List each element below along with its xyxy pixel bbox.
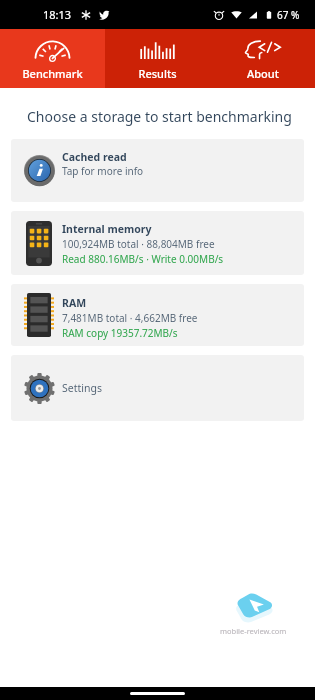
staticText: RAM [62, 296, 87, 310]
button[interactable]: Cached read [11, 139, 304, 202]
button[interactable]: About [210, 29, 315, 88]
button[interactable]: Settings [11, 355, 304, 421]
staticText: Settings [62, 381, 102, 395]
staticText: 18:13 [43, 7, 72, 22]
staticText: Internal memory [62, 222, 152, 236]
staticText: About [247, 66, 279, 81]
staticText: Cached read [62, 150, 127, 164]
staticText: Read 880.16MB/s · Write 0.00MB/s [62, 252, 224, 266]
staticText: 100,924MB total · 88,804MB free [62, 237, 215, 251]
button[interactable]: RAM [11, 284, 304, 346]
button[interactable]: Results [105, 29, 210, 88]
staticText: RAM copy 19357.72MB/s [62, 326, 178, 340]
staticText: Benchmark [22, 66, 83, 81]
staticText: Choose a storage to start benchmarking [27, 107, 292, 126]
staticText: 7,481MB total · 4,662MB free [62, 311, 198, 325]
button[interactable]: Internal memory [11, 211, 304, 275]
staticText: mobile-review.com [220, 626, 287, 636]
button[interactable]: Benchmark [0, 29, 105, 88]
staticText: Results [138, 66, 177, 81]
staticText: 67 % [277, 8, 300, 22]
staticText: Tap for more info [62, 164, 144, 178]
